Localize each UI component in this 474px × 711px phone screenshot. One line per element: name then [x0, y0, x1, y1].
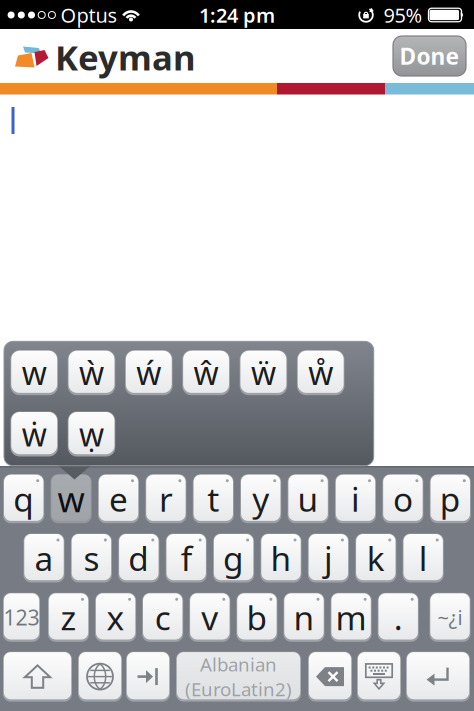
- staticText: ẁ: [79, 351, 104, 394]
- staticText: c: [155, 595, 171, 639]
- staticText: b: [246, 595, 267, 639]
- button[interactable]: Done: [393, 36, 466, 76]
- staticText: i: [351, 477, 360, 521]
- button[interactable]: ẃ: [125, 350, 173, 395]
- staticText: l: [419, 536, 428, 580]
- staticText: x: [107, 595, 125, 639]
- button[interactable]: t: [193, 474, 234, 523]
- button[interactable]: w: [10, 350, 58, 395]
- staticText: Optus: [60, 2, 117, 28]
- button[interactable]: b: [236, 593, 277, 642]
- button[interactable]: x: [95, 593, 136, 642]
- staticText: ẅ: [251, 351, 276, 394]
- button[interactable]: Space: [176, 652, 301, 702]
- staticText: w: [22, 351, 47, 394]
- staticText: n: [293, 595, 314, 639]
- staticText: (EuroLatin2): [185, 677, 292, 701]
- button[interactable]: ~¿i: [429, 593, 470, 642]
- button[interactable]: h: [260, 533, 301, 582]
- button[interactable]: y: [240, 474, 281, 523]
- staticText: t: [207, 477, 219, 521]
- button[interactable]: ŵ: [182, 350, 230, 395]
- staticText: m: [336, 595, 367, 639]
- button[interactable]: ẘ: [297, 350, 344, 395]
- button[interactable]: o: [382, 474, 423, 523]
- staticText: w: [58, 476, 85, 522]
- button[interactable]: ẇ: [10, 411, 58, 456]
- button[interactable]: m: [331, 593, 372, 642]
- staticText: Keyman: [55, 34, 196, 80]
- button[interactable]: f: [166, 533, 207, 582]
- staticText: ŵ: [194, 351, 219, 394]
- staticText: .: [394, 595, 403, 639]
- staticText: Albanian: [200, 652, 277, 677]
- button[interactable]: Shift: [3, 652, 72, 702]
- button[interactable]: e: [98, 474, 139, 523]
- staticText: z: [60, 595, 76, 639]
- button[interactable]: k: [355, 533, 396, 582]
- staticText: a: [34, 536, 53, 580]
- staticText: ẃ: [136, 351, 161, 394]
- button[interactable]: Hide keyboard: [357, 652, 401, 702]
- staticText: v: [201, 595, 218, 639]
- staticText: ẉ: [79, 413, 104, 455]
- button[interactable]: l: [403, 533, 444, 582]
- staticText: Done: [399, 41, 459, 71]
- staticText: e: [109, 477, 128, 521]
- staticText: s: [83, 536, 99, 580]
- staticText: y: [252, 477, 269, 521]
- staticText: o: [393, 477, 413, 521]
- button[interactable]: Delete: [308, 652, 352, 702]
- button[interactable]: Return: [406, 652, 470, 702]
- button[interactable]: c: [142, 593, 183, 642]
- staticText: h: [270, 536, 291, 580]
- staticText: f: [181, 536, 192, 580]
- button[interactable]: w: [51, 474, 92, 523]
- button[interactable]: s: [71, 533, 112, 582]
- button[interactable]: p: [430, 474, 471, 523]
- staticText: q: [13, 477, 34, 521]
- button[interactable]: ẁ: [68, 350, 115, 395]
- button[interactable]: Next keyboard: [78, 652, 122, 702]
- button[interactable]: q: [3, 474, 44, 523]
- button[interactable]: .: [378, 593, 419, 642]
- button[interactable]: r: [145, 474, 186, 523]
- staticText: ẘ: [308, 351, 333, 394]
- staticText: 95%: [383, 2, 422, 28]
- button[interactable]: g: [213, 533, 254, 582]
- button[interactable]: Tab: [126, 652, 170, 702]
- staticText: k: [367, 536, 385, 580]
- staticText: p: [440, 477, 461, 521]
- button[interactable]: ẅ: [240, 350, 287, 395]
- button[interactable]: z: [48, 593, 89, 642]
- button[interactable]: j: [308, 533, 349, 582]
- button[interactable]: a: [23, 533, 64, 582]
- staticText: r: [159, 477, 173, 521]
- staticText: g: [223, 536, 244, 580]
- staticText: ~¿i: [437, 604, 462, 631]
- staticText: u: [298, 477, 319, 521]
- staticText: d: [128, 536, 149, 580]
- button[interactable]: i: [335, 474, 376, 523]
- button[interactable]: 123: [3, 593, 40, 642]
- button[interactable]: ẉ: [68, 411, 115, 456]
- button[interactable]: v: [189, 593, 230, 642]
- staticText: 1:24 pm: [199, 2, 275, 28]
- staticText: j: [324, 536, 333, 580]
- button[interactable]: n: [283, 593, 324, 642]
- staticText: 123: [3, 603, 39, 631]
- staticText: ẇ: [22, 413, 47, 455]
- button[interactable]: d: [118, 533, 159, 582]
- button[interactable]: u: [288, 474, 329, 523]
